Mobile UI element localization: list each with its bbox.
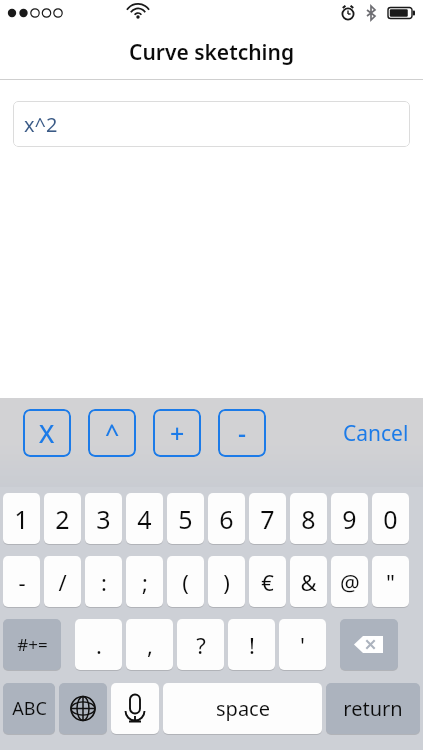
staticText: 4 (137, 502, 152, 536)
button[interactable]: & (290, 556, 327, 607)
staticText: : (101, 567, 107, 597)
button[interactable]: ; (126, 556, 163, 607)
button[interactable]: ' (279, 619, 326, 670)
button[interactable]: - (3, 556, 40, 607)
button[interactable]: , (126, 619, 173, 670)
button[interactable]: X (23, 409, 71, 457)
staticText: 3 (96, 502, 111, 536)
button[interactable]: 9 (331, 493, 368, 544)
button[interactable]: @ (331, 556, 368, 607)
staticText: - (238, 416, 247, 450)
button[interactable]: / (44, 556, 81, 607)
button[interactable]: Change keyboard (59, 683, 107, 734)
staticText: x^2 (24, 111, 58, 138)
staticText: 0 (383, 502, 398, 536)
button[interactable]: 4 (126, 493, 163, 544)
staticText: & (300, 567, 317, 597)
staticText: 5 (178, 502, 193, 536)
button[interactable]: 5 (167, 493, 204, 544)
button[interactable]: 7 (249, 493, 286, 544)
button[interactable]: ! (228, 619, 275, 670)
button[interactable]: 2 (44, 493, 81, 544)
staticText: Curve sketching (129, 38, 295, 67)
staticText: X (39, 416, 55, 450)
staticText: ; (142, 567, 148, 597)
button[interactable]: € (249, 556, 286, 607)
button[interactable]: ) (208, 556, 245, 607)
staticText: ( (182, 567, 189, 597)
staticText: @ (340, 567, 360, 597)
button[interactable]: 8 (290, 493, 327, 544)
button[interactable]: 6 (208, 493, 245, 544)
button[interactable]: ^ (88, 409, 136, 457)
button[interactable]: 1 (3, 493, 40, 544)
button[interactable]: return (326, 683, 420, 734)
button[interactable]: ? (177, 619, 224, 670)
staticText: ^ (105, 416, 120, 450)
staticText: #+= (17, 633, 48, 656)
button[interactable]: space (163, 683, 322, 734)
staticText: return (343, 695, 403, 722)
staticText: 1 (14, 502, 29, 536)
staticText: ABC (12, 696, 47, 721)
staticText: + (170, 416, 185, 450)
staticText: 8 (301, 502, 316, 536)
staticText: . (96, 630, 102, 660)
button[interactable]: " (372, 556, 409, 607)
button[interactable]: #+= (3, 619, 61, 670)
staticText: ) (223, 567, 230, 597)
button[interactable]: x^2 (13, 101, 410, 147)
staticText: 7 (260, 502, 275, 536)
staticText: - (18, 567, 26, 597)
button[interactable]: : (85, 556, 122, 607)
staticText: " (386, 567, 395, 597)
button[interactable]: Cancel (343, 409, 409, 457)
staticText: Cancel (343, 419, 409, 448)
staticText: 6 (219, 502, 234, 536)
button[interactable]: Backspace (340, 619, 398, 670)
button[interactable]: 3 (85, 493, 122, 544)
button[interactable]: ABC (3, 683, 55, 734)
button[interactable]: - (218, 409, 266, 457)
staticText: ? (196, 630, 206, 660)
staticText: , (147, 630, 153, 660)
button[interactable]: Dictation (111, 683, 159, 734)
button[interactable]: + (153, 409, 201, 457)
staticText: 2 (55, 502, 70, 536)
button[interactable]: . (75, 619, 122, 670)
button[interactable]: 0 (372, 493, 409, 544)
staticText: ' (300, 630, 305, 660)
staticText: space (216, 695, 270, 722)
button[interactable]: ( (167, 556, 204, 607)
staticText: / (58, 567, 67, 597)
staticText: 9 (342, 502, 357, 536)
staticText: ! (249, 630, 255, 660)
staticText: € (261, 567, 274, 597)
